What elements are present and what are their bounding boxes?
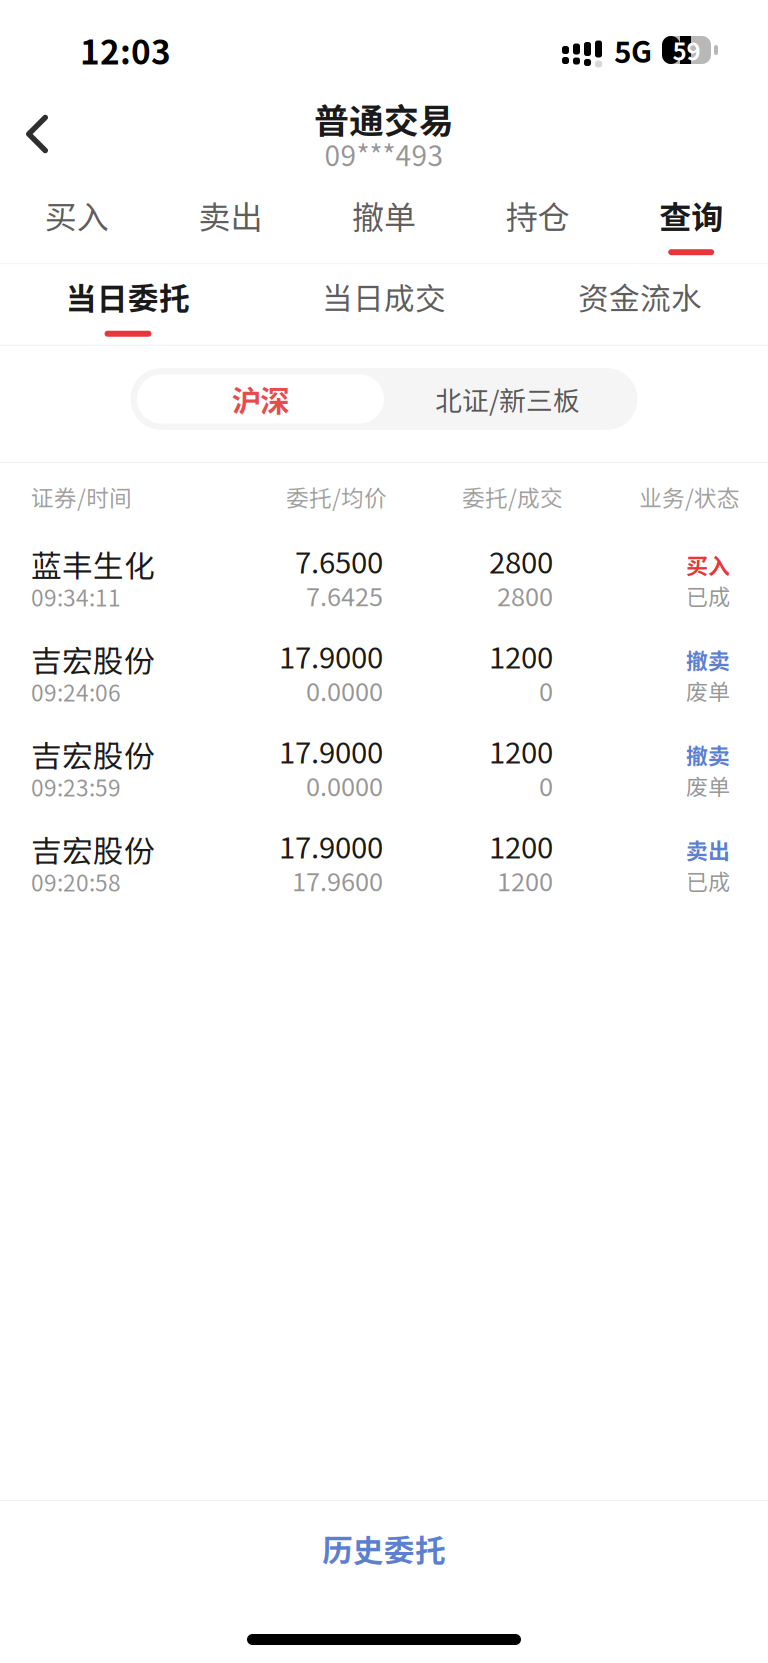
button[interactable]: 当日成交 <box>256 251 512 337</box>
button[interactable]: 当日委托 <box>0 251 256 337</box>
staticText: 撤卖 <box>686 644 730 675</box>
button[interactable]: 持仓 <box>461 182 614 255</box>
button[interactable]: 历史委托 <box>0 1501 768 1596</box>
staticText: 北证/新三板 <box>435 380 580 418</box>
staticText: 已成 <box>686 864 730 896</box>
staticText: 17.9000 <box>279 729 383 772</box>
staticText: 7.6500 <box>295 539 383 582</box>
staticText: 废单 <box>686 674 730 706</box>
staticText: 1200 <box>489 634 553 677</box>
staticText: 17.9000 <box>279 634 383 677</box>
staticText: 7.6425 <box>306 577 383 614</box>
staticText: 17.9600 <box>292 862 383 899</box>
staticText: 委托/成交 <box>462 480 563 513</box>
staticText: 资金流水 <box>578 274 702 319</box>
staticText: 17.9000 <box>279 824 383 867</box>
button[interactable]: 蓝丰生化 <box>0 530 768 625</box>
staticText: 2800 <box>489 539 553 582</box>
staticText: 查询 <box>659 192 723 238</box>
staticText: 吉宏股份 <box>31 732 155 776</box>
button[interactable]: 吉宏股份 <box>0 625 768 720</box>
staticText: 委托/均价 <box>286 480 387 513</box>
staticText: 沪深 <box>231 378 289 420</box>
staticText: 59 <box>672 33 700 67</box>
button[interactable]: 北证/新三板 <box>384 374 631 423</box>
staticText: 当日委托 <box>66 274 190 319</box>
staticText: 1200 <box>489 824 553 867</box>
staticText: 证券/时间 <box>31 480 132 513</box>
staticText: 0 <box>539 767 553 804</box>
button[interactable]: 撤单 <box>307 182 461 255</box>
staticText: 2800 <box>497 577 553 614</box>
staticText: 1200 <box>497 862 553 899</box>
staticText: 买入 <box>686 549 730 580</box>
staticText: 持仓 <box>506 192 570 238</box>
button[interactable]: 返回 <box>0 94 74 186</box>
staticText: 蓝丰生化 <box>31 542 155 586</box>
staticText: 历史委托 <box>322 1526 446 1571</box>
staticText: 普通交易 <box>314 94 454 144</box>
staticText: 卖出 <box>686 834 730 865</box>
staticText: 09:23:59 <box>31 770 121 803</box>
button[interactable]: 沪深 <box>137 374 384 423</box>
staticText: 已成 <box>686 579 730 611</box>
staticText: 1200 <box>489 729 553 772</box>
button[interactable]: 资金流水 <box>512 251 768 337</box>
staticText: 撤单 <box>352 192 416 238</box>
staticText: 09***493 <box>324 134 443 174</box>
staticText: 吉宏股份 <box>31 827 155 871</box>
staticText: 撤卖 <box>686 739 730 770</box>
staticText: 09:34:11 <box>31 580 121 613</box>
staticText: 0.0000 <box>306 767 383 804</box>
staticText: 0.0000 <box>306 672 383 709</box>
staticText: 09:20:58 <box>31 865 121 898</box>
button[interactable]: 买入 <box>0 182 154 255</box>
staticText: 卖出 <box>198 192 262 238</box>
staticText: 0 <box>539 672 553 709</box>
staticText: 12:03 <box>80 26 171 74</box>
staticText: 吉宏股份 <box>31 637 155 681</box>
staticText: 买入 <box>45 192 109 238</box>
staticText: 业务/状态 <box>639 480 740 513</box>
button[interactable]: 查询 <box>614 182 768 255</box>
button[interactable]: 吉宏股份 <box>0 720 768 815</box>
staticText: 废单 <box>686 769 730 801</box>
staticText: 5G <box>614 29 652 71</box>
staticText: 当日成交 <box>322 274 446 319</box>
staticText: 09:24:06 <box>31 675 121 708</box>
button[interactable]: 吉宏股份 <box>0 815 768 910</box>
button[interactable]: 卖出 <box>154 182 307 255</box>
